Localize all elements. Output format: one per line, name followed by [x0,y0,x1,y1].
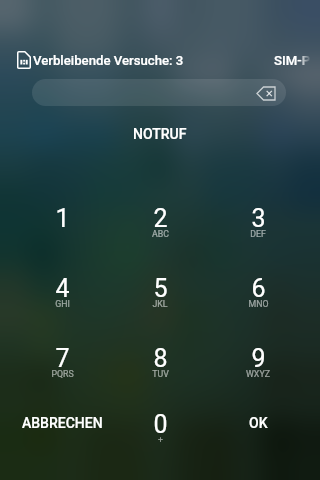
staticText: 8 [153,344,168,373]
button[interactable]: 5 [111,274,209,344]
staticText: ABC [152,229,169,239]
button[interactable]: Backspace [32,79,286,106]
button[interactable]: 8 [111,344,209,410]
staticText: 2 [153,204,168,233]
staticText: Verbleibende Versuche: 3 [33,53,184,68]
button[interactable]: 0 [111,410,209,470]
staticText: 9 [251,344,266,373]
staticText: 1 [55,204,70,233]
staticText: DEF [250,229,266,239]
staticText: NOTRUF [133,126,187,142]
staticText: GHI [55,299,70,309]
button[interactable]: NOTRUF [117,122,203,146]
staticText: JKL [152,299,168,309]
button[interactable]: Backspace [254,81,278,105]
staticText: 5 [153,274,168,303]
button[interactable]: OK [209,410,307,470]
staticText: ABBRECHEN [22,415,103,431]
button[interactable]: 6 [209,274,307,344]
staticText: + [158,435,163,445]
button[interactable]: 4 [13,274,111,344]
button[interactable]: 1 [13,204,111,274]
other: SIM card [17,51,31,69]
staticText: 4 [55,274,70,303]
staticText: OK [249,415,268,431]
staticText: PQRS [51,369,74,379]
staticText: MNO [248,299,269,309]
button[interactable]: 2 [111,204,209,274]
button[interactable]: 9 [209,344,307,410]
button[interactable]: 7 [13,344,111,410]
staticText: 6 [251,274,266,303]
staticText: TUV [152,369,169,379]
staticText: 3 [251,204,266,233]
staticText: WXYZ [246,369,270,379]
button[interactable]: ABBRECHEN [13,410,111,470]
staticText: SIM-PIN eingeben [274,53,320,68]
staticText: 0 [153,410,168,439]
staticText: 7 [55,344,70,373]
button[interactable]: 3 [209,204,307,274]
